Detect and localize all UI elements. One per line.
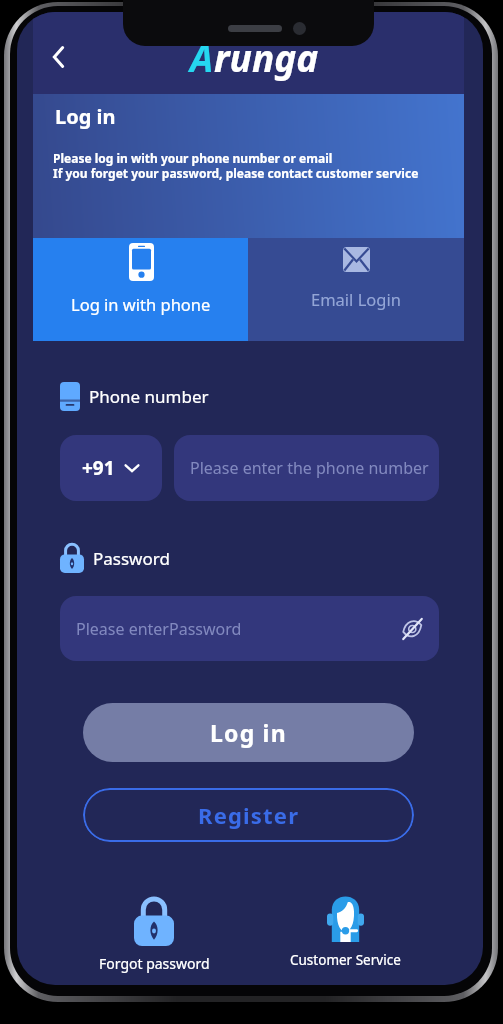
button[interactable]: Please enter the phone number bbox=[174, 435, 439, 501]
button[interactable]: Email Login bbox=[248, 238, 464, 341]
staticText: Email Login bbox=[311, 288, 401, 310]
staticText: Please enterPassword bbox=[76, 618, 242, 640]
staticText: Password bbox=[93, 547, 170, 570]
button[interactable]: Forgot password bbox=[94, 897, 214, 973]
button[interactable]: Register bbox=[83, 788, 414, 842]
staticText: +91 bbox=[82, 455, 115, 481]
button[interactable]: Please enterPassword bbox=[60, 596, 439, 661]
staticText: runga bbox=[214, 32, 319, 82]
staticText: Customer Service bbox=[290, 951, 401, 969]
staticText: Please log in with your phone number or … bbox=[53, 150, 419, 181]
staticText: Phone number bbox=[89, 385, 209, 408]
staticText: Log in bbox=[55, 103, 116, 130]
staticText: Forgot password bbox=[99, 954, 210, 973]
button[interactable]: Log in with phone bbox=[33, 238, 248, 341]
button[interactable]: Back bbox=[42, 44, 84, 86]
button[interactable]: Log in bbox=[83, 703, 414, 762]
staticText: Log in with phone bbox=[71, 293, 211, 315]
button[interactable]: Customer Service bbox=[285, 891, 405, 969]
button[interactable]: +91 bbox=[60, 435, 162, 501]
staticText: Register bbox=[198, 800, 300, 830]
staticText: Please enter the phone number bbox=[190, 457, 429, 479]
staticText: A bbox=[190, 32, 214, 82]
button[interactable]: Show password bbox=[394, 611, 430, 647]
staticText: Log in bbox=[210, 717, 287, 748]
